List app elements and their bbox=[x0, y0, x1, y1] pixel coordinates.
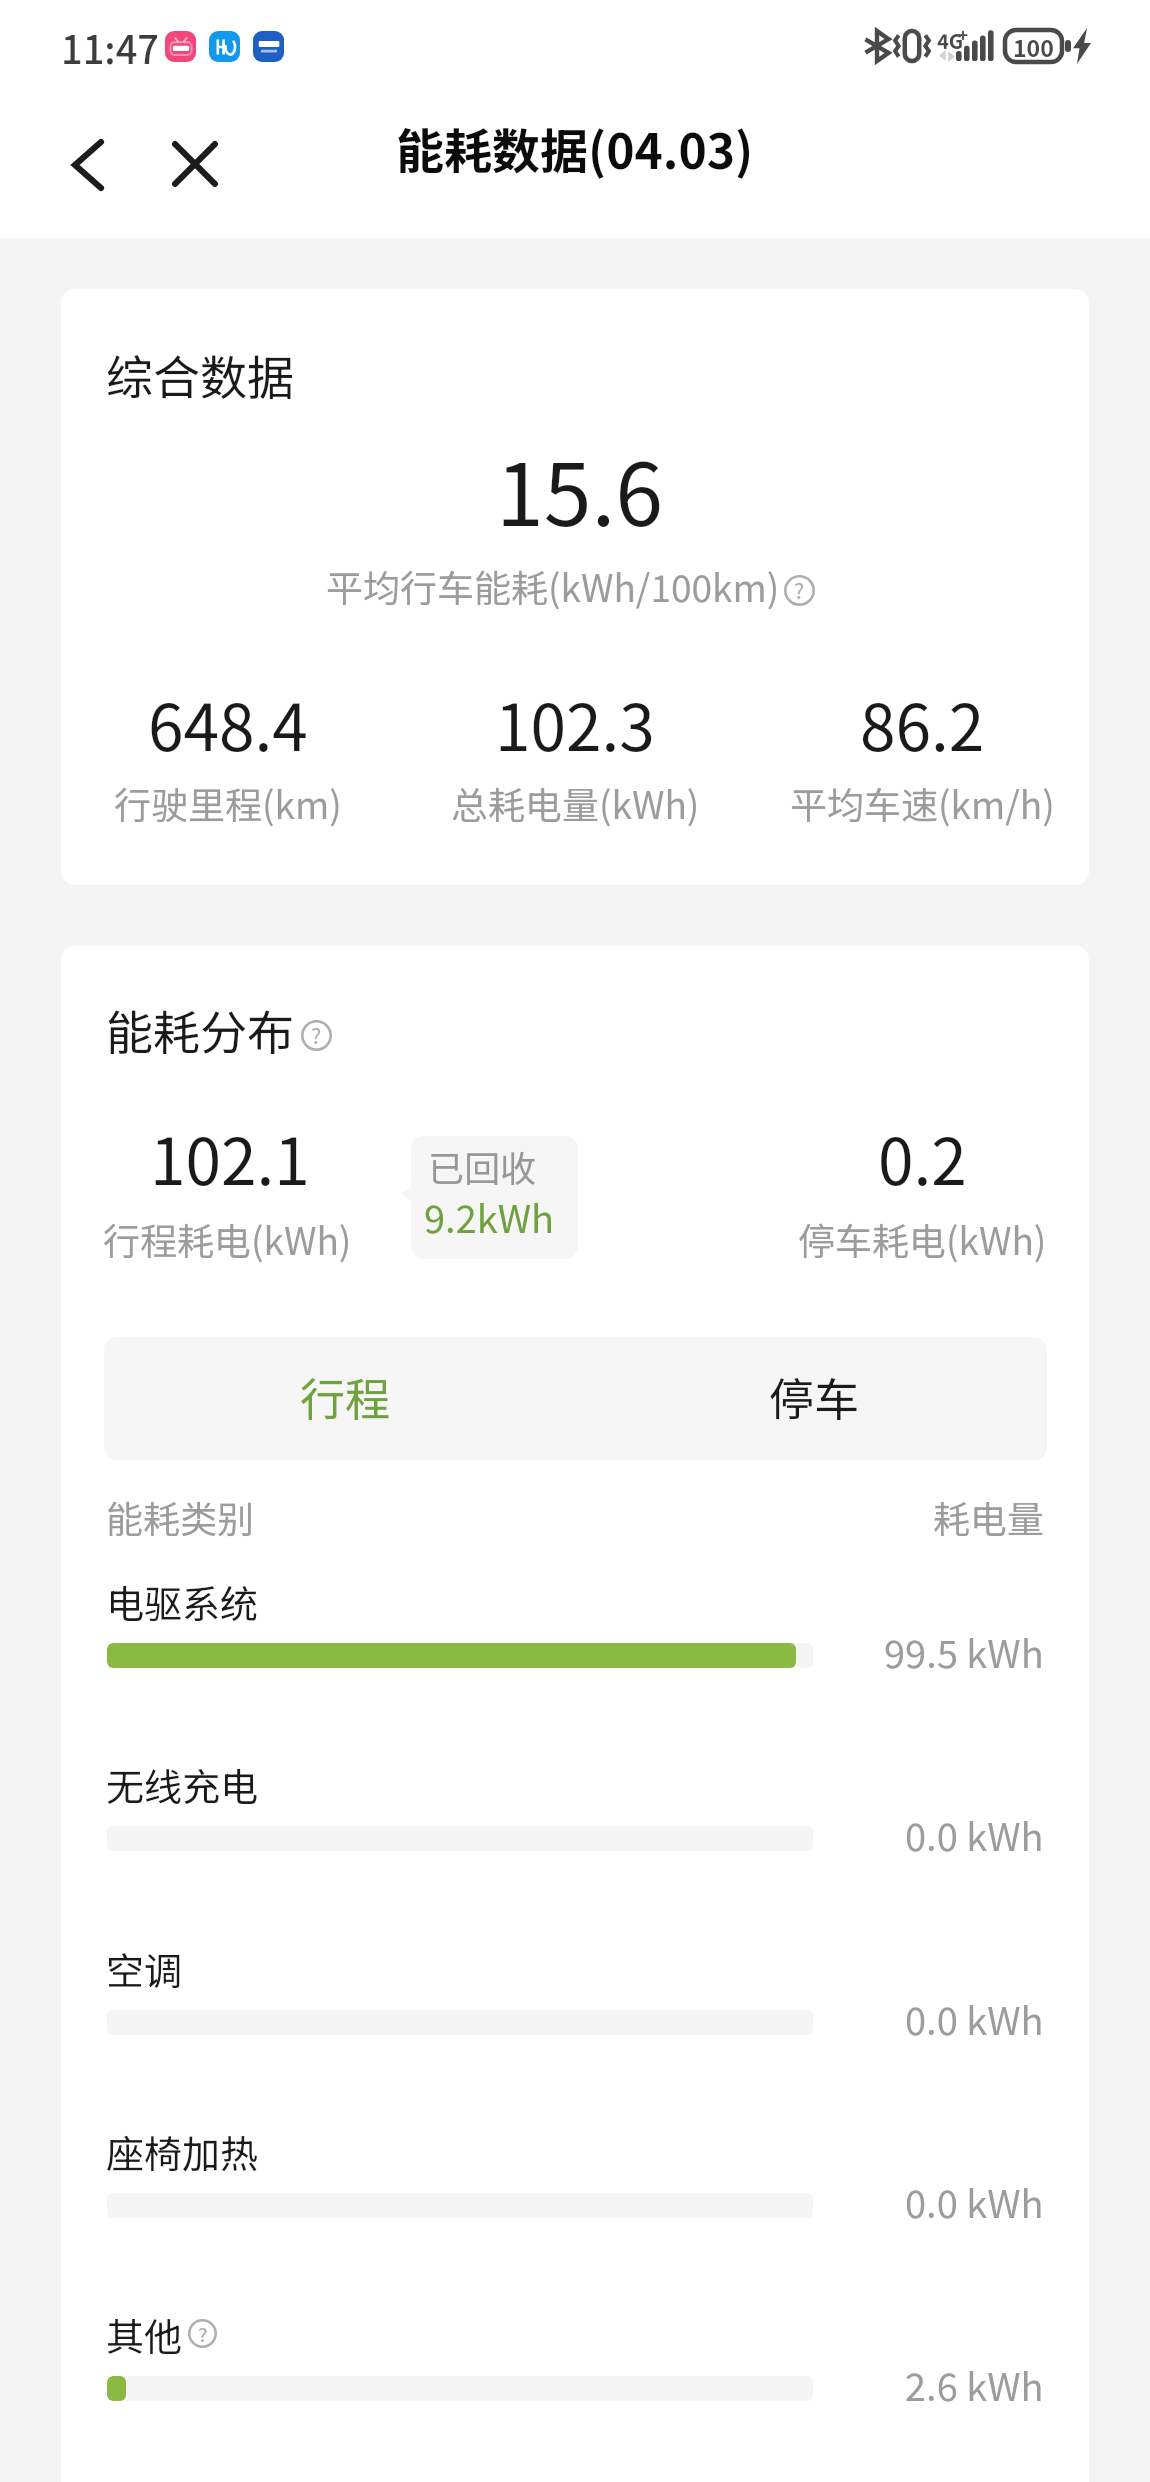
button[interactable]: 停车 bbox=[575, 1337, 1047, 1460]
staticText: 行程耗电(kWh) bbox=[103, 1212, 352, 1266]
staticText: 15.6 bbox=[496, 426, 664, 551]
staticText: 2.6 kWh bbox=[905, 2357, 1044, 2412]
button[interactable]: Help bbox=[784, 575, 815, 606]
button[interactable]: Close bbox=[132, 95, 258, 233]
staticText: 102.3 bbox=[495, 677, 655, 770]
button[interactable]: 行程 bbox=[104, 1337, 575, 1460]
staticText: 100 bbox=[1013, 30, 1054, 62]
staticText: ? bbox=[311, 1019, 322, 1050]
staticText: 11:47 bbox=[61, 20, 159, 75]
staticText: 0.0 kWh bbox=[905, 2174, 1044, 2229]
staticText: 平均车速(km/h) bbox=[790, 776, 1055, 830]
staticText: 总耗电量(kWh) bbox=[451, 776, 700, 830]
staticText: ? bbox=[794, 574, 805, 605]
staticText: 电驱系统 bbox=[106, 1574, 259, 1629]
staticText: 平均行车能耗(kWh/100km) bbox=[326, 559, 780, 613]
staticText: 停车耗电(kWh) bbox=[798, 1212, 1047, 1266]
staticText: 已回收 bbox=[428, 1140, 537, 1192]
staticText: 能耗数据(04.03) bbox=[396, 113, 754, 183]
staticText: 行驶里程(km) bbox=[114, 776, 342, 830]
staticText: 648.4 bbox=[148, 677, 308, 770]
staticText: 99.5 kWh bbox=[884, 1624, 1044, 1679]
staticText: + bbox=[958, 22, 969, 47]
staticText: 无线充电 bbox=[106, 1757, 259, 1812]
button[interactable]: Help bbox=[188, 2319, 217, 2348]
staticText: 停车 bbox=[769, 1364, 860, 1429]
staticText: 行程 bbox=[300, 1364, 391, 1429]
button[interactable]: Back bbox=[25, 96, 151, 234]
staticText: 0.0 kWh bbox=[905, 1807, 1044, 1862]
staticText: 86.2 bbox=[860, 677, 985, 770]
staticText: 空调 bbox=[106, 1941, 183, 1996]
staticText: 其他 bbox=[106, 2307, 183, 2362]
staticText: 0.0 kWh bbox=[905, 1991, 1044, 2046]
staticText: ? bbox=[198, 2318, 208, 2347]
staticText: 4G bbox=[937, 26, 964, 55]
staticText: 9.2kWh bbox=[424, 1189, 555, 1244]
button[interactable]: Help bbox=[301, 1020, 332, 1051]
staticText: 102.1 bbox=[150, 1111, 310, 1204]
staticText: 能耗类别 bbox=[106, 1490, 254, 1544]
staticText: 0.2 bbox=[878, 1111, 967, 1204]
staticText: 耗电量 bbox=[933, 1490, 1044, 1544]
staticText: 综合数据 bbox=[106, 340, 294, 408]
staticText: 座椅加热 bbox=[106, 2124, 259, 2179]
staticText: 能耗分布 bbox=[106, 995, 294, 1063]
